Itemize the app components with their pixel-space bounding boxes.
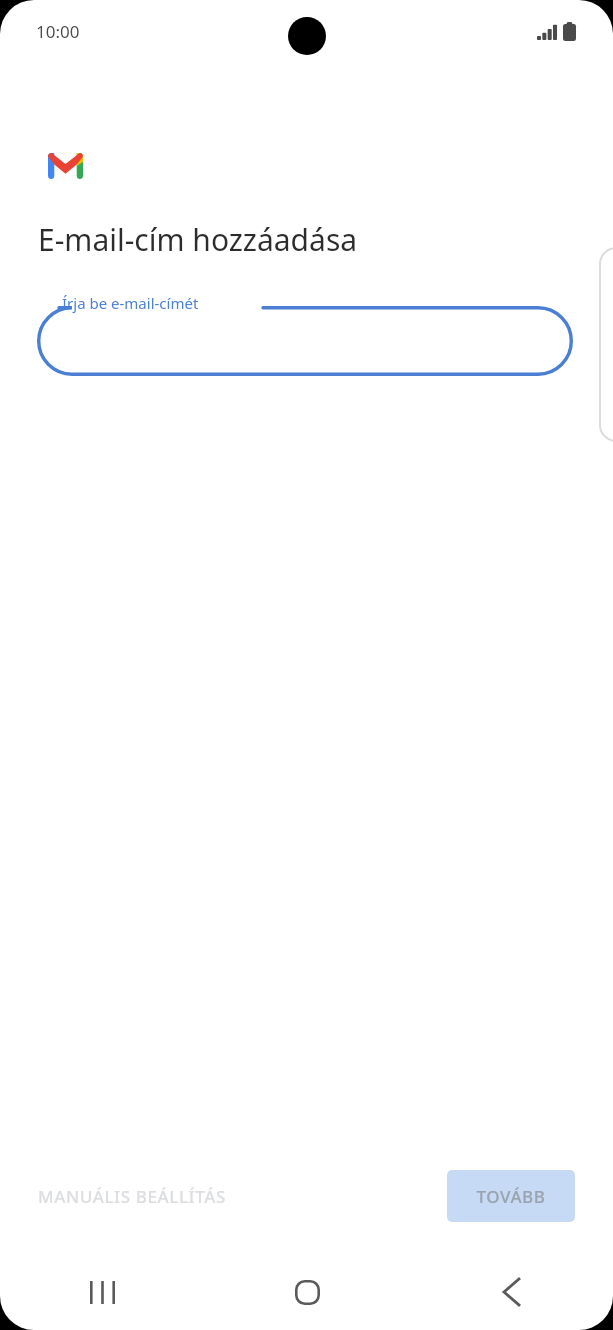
button[interactable]: Back bbox=[409, 1254, 613, 1330]
button[interactable]: Írja be e-mail-címét bbox=[37, 288, 573, 376]
staticText: E-mail-cím hozzáadása bbox=[38, 219, 358, 260]
staticText: TOVÁBB bbox=[476, 1185, 546, 1208]
button[interactable]: Home bbox=[205, 1254, 409, 1330]
staticText: Írja be e-mail-címét bbox=[62, 293, 199, 313]
button[interactable]: TOVÁBB bbox=[447, 1170, 575, 1222]
button[interactable]: Recent apps bbox=[0, 1254, 205, 1330]
staticText: MANUÁLIS BEÁLLÍTÁS bbox=[38, 1185, 226, 1208]
button[interactable]: MANUÁLIS BEÁLLÍTÁS bbox=[24, 1175, 240, 1218]
staticText: 10:00 bbox=[36, 20, 80, 43]
